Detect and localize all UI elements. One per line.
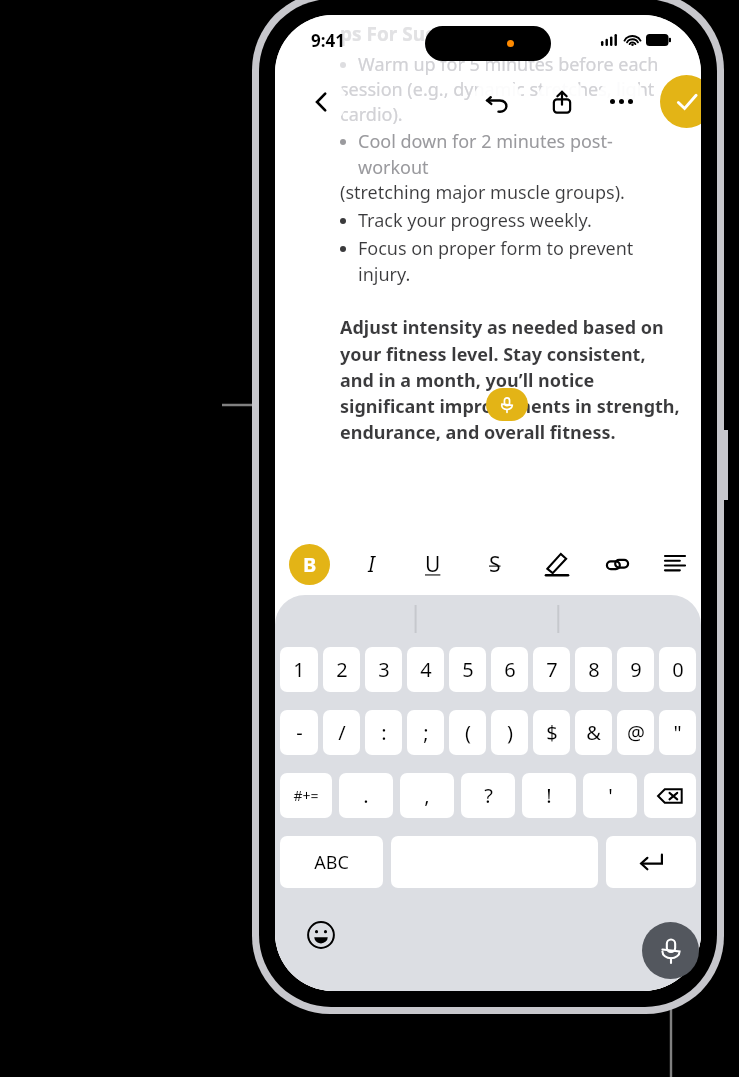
button[interactable]: 9 <box>617 647 654 692</box>
staticText: 8 <box>588 656 600 683</box>
staticText: Track your progress weekly. <box>358 208 592 233</box>
button[interactable]: 3 <box>365 647 402 692</box>
button[interactable]: Dictate <box>486 388 528 421</box>
button[interactable]: Link <box>598 545 636 583</box>
staticText: 6 <box>504 656 516 683</box>
button[interactable]: 1 <box>280 647 318 692</box>
staticText: Adjust intensity as needed based on your… <box>340 315 683 444</box>
button[interactable]: ! <box>522 773 576 818</box>
button[interactable]: . <box>339 773 393 818</box>
button[interactable]: @ <box>617 710 654 755</box>
staticText: 1 <box>293 656 305 683</box>
staticText: @ <box>627 719 645 746</box>
button[interactable]: Return <box>606 836 696 888</box>
staticText: 9:41 <box>311 29 345 52</box>
staticText: U <box>425 550 441 579</box>
staticText: ps For Success: <box>340 21 481 47</box>
staticText: 4 <box>420 656 432 683</box>
staticText: 3 <box>378 656 390 683</box>
staticText: ABC <box>314 850 349 875</box>
staticText: S <box>489 550 501 579</box>
staticText: & <box>586 719 601 746</box>
button[interactable]: Voice input <box>642 922 699 979</box>
button[interactable]: ; <box>407 710 444 755</box>
staticText: ) <box>507 719 513 746</box>
staticText: 0 <box>672 656 684 683</box>
staticText: 5 <box>462 656 474 683</box>
button[interactable]: ( <box>449 710 486 755</box>
button[interactable]: Backspace <box>644 773 696 818</box>
staticText: 9 <box>630 656 642 683</box>
button[interactable]: ) <box>491 710 528 755</box>
button[interactable]: : <box>365 710 402 755</box>
staticText: I <box>368 550 375 579</box>
staticText: ( <box>465 719 471 746</box>
button[interactable]: Done <box>660 75 701 128</box>
button[interactable]: , <box>400 773 454 818</box>
staticText: - <box>296 719 303 746</box>
staticText: Cool down for 2 minutes post-workout <box>358 129 683 180</box>
button[interactable]: 8 <box>575 647 612 692</box>
button[interactable]: S <box>476 545 514 583</box>
button[interactable]: Align <box>656 545 694 583</box>
button[interactable]: Highlight <box>538 545 576 583</box>
staticText: : <box>381 719 387 746</box>
staticText: B <box>303 551 317 578</box>
staticText: #+= <box>293 786 319 805</box>
button[interactable]: Bold <box>289 544 330 585</box>
button[interactable]: - <box>280 710 318 755</box>
staticText: / <box>338 719 346 746</box>
button[interactable]: ABC <box>280 836 383 888</box>
button[interactable]: 0 <box>659 647 696 692</box>
button[interactable]: Share <box>537 77 586 126</box>
button[interactable]: 4 <box>407 647 444 692</box>
button[interactable]: 7 <box>533 647 570 692</box>
staticText: Warm up for 5 minutes before each <box>358 52 659 77</box>
button[interactable]: 5 <box>449 647 486 692</box>
button[interactable]: ? <box>461 773 515 818</box>
staticText: session (e.g., dynamic stretches, light <box>340 77 655 102</box>
button[interactable]: / <box>323 710 360 755</box>
button[interactable]: " <box>659 710 696 755</box>
staticText: " <box>673 719 682 746</box>
button[interactable]: 6 <box>491 647 528 692</box>
staticText: ' <box>608 782 613 809</box>
button[interactable]: $ <box>533 710 570 755</box>
button[interactable]: Back <box>297 77 346 126</box>
staticText: 7 <box>546 656 558 683</box>
staticText: , <box>424 782 430 809</box>
staticText: $ <box>546 719 558 746</box>
staticText: ! <box>546 782 552 809</box>
button[interactable]: & <box>575 710 612 755</box>
button[interactable]: I <box>352 545 390 583</box>
button[interactable]: ' <box>583 773 637 818</box>
staticText: cardio). <box>340 102 403 127</box>
button[interactable]: U <box>414 545 452 583</box>
button[interactable]: Emoji <box>303 917 339 953</box>
staticText: . <box>363 782 369 809</box>
button[interactable]: More options <box>597 77 646 126</box>
staticText: Focus on proper form to prevent injury. <box>358 236 683 287</box>
staticText: (stretching major muscle groups). <box>340 180 625 205</box>
button[interactable]: Undo <box>473 77 522 126</box>
button[interactable]: #+= <box>280 773 332 818</box>
staticText: ; <box>423 719 429 746</box>
button[interactable]: 2 <box>323 647 360 692</box>
staticText: 2 <box>336 656 348 683</box>
staticText: ? <box>484 782 493 809</box>
